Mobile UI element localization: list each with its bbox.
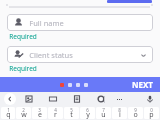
button[interactable]: 0: [144, 107, 159, 119]
button[interactable]: [7, 4, 153, 8]
button[interactable]: [76, 83, 80, 87]
button[interactable]: [84, 83, 88, 87]
button[interactable]: 9: [128, 107, 143, 119]
button[interactable]: Client status: [7, 46, 153, 63]
staticText: e: [38, 110, 42, 119]
staticText: 8: [118, 107, 121, 113]
button[interactable]: 4: [48, 107, 63, 119]
staticText: 1: [7, 107, 10, 113]
staticText: i: [119, 110, 121, 119]
staticText: 5: [70, 107, 73, 113]
button[interactable]: 7: [96, 107, 111, 119]
staticText: w: [21, 110, 27, 119]
button[interactable]: [107, 0, 152, 3]
button[interactable]: Clipboard: [72, 94, 82, 104]
staticText: Required: [9, 64, 37, 73]
button[interactable]: 8: [112, 107, 127, 119]
button[interactable]: 1: [1, 107, 15, 119]
button[interactable]: 2: [16, 107, 31, 119]
button[interactable]: Close keyboard: [4, 93, 16, 105]
staticText: o: [133, 110, 138, 119]
button[interactable]: 6: [80, 107, 95, 119]
button[interactable]: GIF: [48, 94, 58, 104]
button[interactable]: [7, 78, 153, 90]
staticText: 7: [102, 107, 105, 113]
staticText: u: [101, 110, 106, 119]
staticText: 4: [54, 107, 57, 113]
button[interactable]: More options: [114, 94, 124, 104]
button[interactable]: [68, 83, 72, 87]
staticText: p: [149, 110, 154, 119]
button[interactable]: [60, 83, 64, 87]
button[interactable]: 3: [32, 107, 47, 119]
staticText: NEXT: [132, 79, 153, 90]
staticText: Required: [9, 32, 37, 41]
staticText: 9: [134, 107, 137, 113]
staticText: Client status: [29, 50, 73, 60]
staticText: 6: [86, 107, 89, 113]
staticText: r: [54, 110, 57, 119]
staticText: q: [6, 110, 11, 119]
staticText: Full name: [29, 18, 64, 28]
button[interactable]: Voice input: [145, 94, 155, 104]
button[interactable]: Stickers: [24, 94, 34, 104]
button[interactable]: 5: [64, 107, 79, 119]
staticText: 2: [22, 107, 25, 113]
staticText: 3: [38, 107, 41, 113]
staticText: y: [86, 110, 90, 119]
staticText: 0: [150, 107, 153, 113]
button[interactable]: NEXT: [130, 78, 155, 91]
button[interactable]: Expand: [139, 51, 147, 59]
button[interactable]: Settings: [96, 94, 106, 104]
staticText: t: [70, 110, 73, 119]
button[interactable]: Full name: [7, 14, 153, 31]
